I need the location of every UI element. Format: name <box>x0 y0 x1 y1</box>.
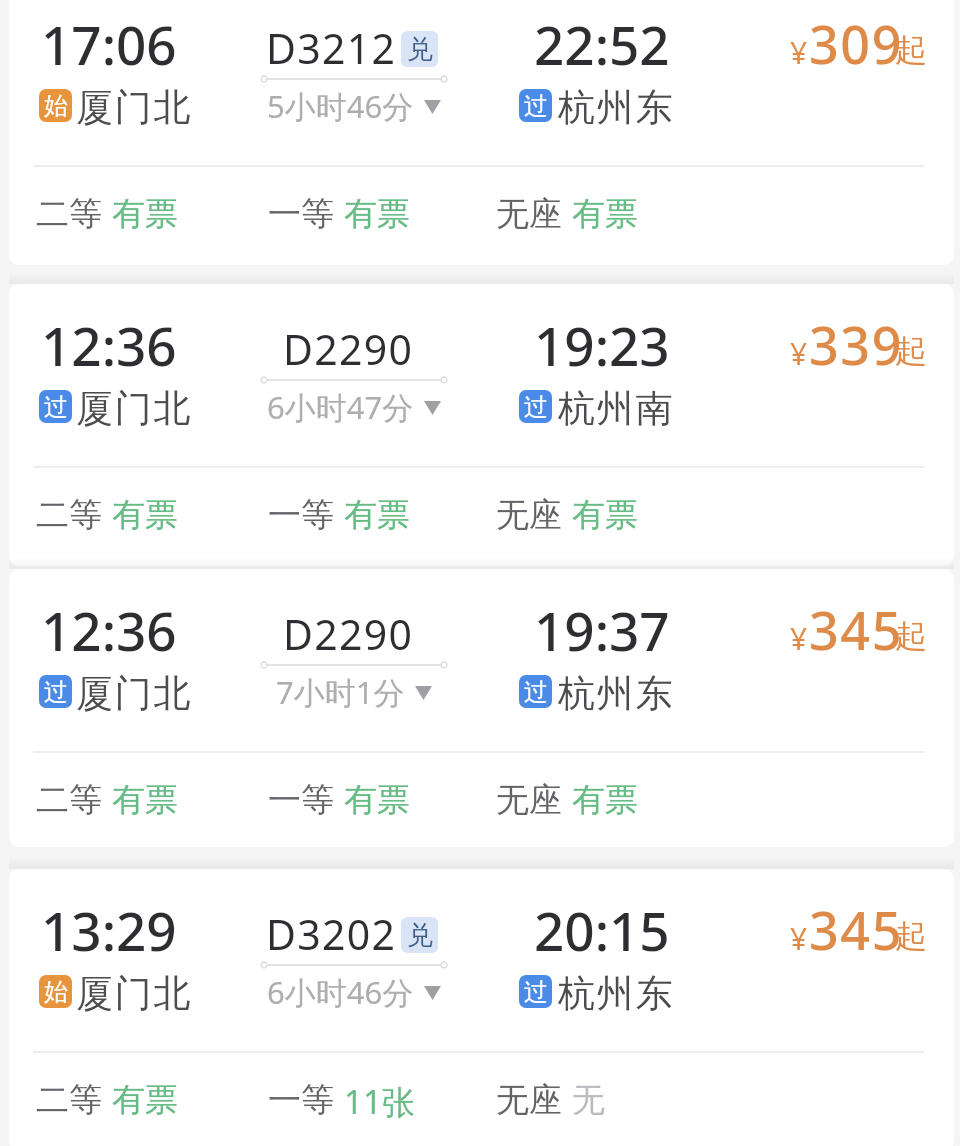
staticText: 起 <box>895 616 927 656</box>
staticText: 二等 <box>36 779 102 821</box>
staticText: 5小时46分 <box>267 85 414 127</box>
staticText: 杭州东 <box>558 670 675 717</box>
staticText: 无座 <box>496 193 562 235</box>
staticText: 过 <box>44 392 68 422</box>
staticText: 6小时46分 <box>267 971 414 1013</box>
staticText: ¥ <box>790 918 808 959</box>
staticText: 过 <box>524 392 548 422</box>
staticText: 过 <box>44 677 68 707</box>
staticText: 无座 <box>496 1079 562 1121</box>
staticText: 有票 <box>572 193 638 235</box>
staticText: 20:15 <box>534 894 670 966</box>
staticText: 厦门北 <box>76 84 193 131</box>
staticText: 二等 <box>36 193 102 235</box>
button[interactable]: 13:29 <box>9 869 954 1146</box>
staticText: 19:23 <box>534 309 670 381</box>
button[interactable]: 12:36 <box>9 284 954 566</box>
staticText: 7小时1分 <box>276 671 405 713</box>
staticText: 无座 <box>496 494 562 536</box>
staticText: 有票 <box>112 193 178 235</box>
staticText: 22:52 <box>534 8 670 80</box>
staticText: 过 <box>524 977 548 1007</box>
staticText: 12:36 <box>41 594 177 666</box>
staticText: 起 <box>895 916 927 956</box>
staticText: 过 <box>524 91 548 121</box>
staticText: 起 <box>895 30 927 70</box>
staticText: 一等 <box>268 193 334 235</box>
staticText: 过 <box>524 677 548 707</box>
staticText: 厦门北 <box>76 670 193 717</box>
staticText: ¥ <box>790 618 808 659</box>
staticText: 309 <box>809 8 904 79</box>
staticText: 无座 <box>496 779 562 821</box>
button[interactable]: 12:36 <box>9 569 954 847</box>
staticText: 二等 <box>36 494 102 536</box>
button[interactable]: 展开经停站 <box>267 85 441 127</box>
staticText: 杭州东 <box>558 84 675 131</box>
staticText: D3212 <box>266 20 397 76</box>
button[interactable]: 展开经停站 <box>267 386 441 428</box>
staticText: 有票 <box>112 1079 178 1121</box>
staticText: 有票 <box>344 779 410 821</box>
button[interactable]: 17:06 <box>9 0 954 265</box>
staticText: 一等 <box>268 1079 334 1121</box>
staticText: ¥ <box>790 333 808 374</box>
staticText: 12:36 <box>41 309 177 381</box>
staticText: 兑 <box>407 33 433 66</box>
staticText: 杭州南 <box>558 385 675 432</box>
staticText: D2290 <box>283 321 414 377</box>
staticText: 11张 <box>344 1079 415 1124</box>
staticText: 有票 <box>112 779 178 821</box>
staticText: 二等 <box>36 1079 102 1121</box>
staticText: 有票 <box>572 779 638 821</box>
staticText: 有票 <box>572 494 638 536</box>
staticText: 有票 <box>344 494 410 536</box>
staticText: ¥ <box>790 32 808 73</box>
staticText: D3202 <box>266 906 397 962</box>
staticText: 杭州东 <box>558 970 675 1017</box>
staticText: 17:06 <box>41 8 177 80</box>
button[interactable]: 展开经停站 <box>276 671 432 713</box>
staticText: 始 <box>44 977 68 1007</box>
button[interactable]: 展开经停站 <box>267 971 441 1013</box>
staticText: 13:29 <box>41 894 177 966</box>
staticText: 345 <box>809 594 904 665</box>
staticText: D2290 <box>283 606 414 662</box>
staticText: 兑 <box>407 919 433 952</box>
staticText: 6小时47分 <box>267 386 414 428</box>
staticText: 有票 <box>112 494 178 536</box>
staticText: 始 <box>44 91 68 121</box>
staticText: 起 <box>895 331 927 371</box>
staticText: 无 <box>572 1079 605 1121</box>
staticText: 厦门北 <box>76 385 193 432</box>
staticText: 厦门北 <box>76 970 193 1017</box>
staticText: 345 <box>809 894 904 965</box>
staticText: 19:37 <box>534 594 670 666</box>
staticText: 一等 <box>268 779 334 821</box>
staticText: 有票 <box>344 193 410 235</box>
staticText: 339 <box>809 309 904 380</box>
staticText: 一等 <box>268 494 334 536</box>
